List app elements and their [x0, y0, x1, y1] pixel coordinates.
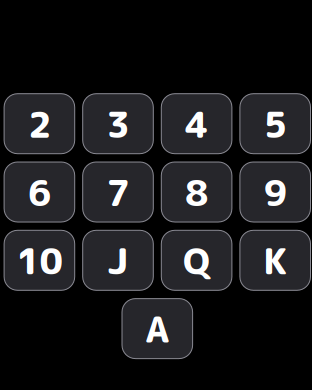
button[interactable]: 10 — [4, 230, 75, 290]
staticText: 2 — [28, 99, 51, 149]
staticText: K — [263, 236, 287, 286]
button[interactable]: 5 — [240, 94, 310, 154]
staticText: A — [145, 304, 169, 354]
button[interactable]: A — [122, 299, 193, 359]
staticText: 8 — [185, 167, 208, 217]
staticText: 3 — [106, 99, 129, 149]
button[interactable]: 4 — [161, 94, 232, 154]
staticText: 9 — [264, 167, 287, 217]
button[interactable]: K — [240, 230, 310, 290]
button[interactable]: J — [83, 230, 153, 290]
button[interactable]: 7 — [83, 162, 153, 222]
staticText: 7 — [106, 167, 129, 217]
button[interactable]: 9 — [240, 162, 310, 222]
button[interactable]: 3 — [83, 94, 153, 154]
staticText: 10 — [16, 236, 62, 286]
staticText: 6 — [28, 167, 51, 217]
staticText: 5 — [264, 99, 287, 149]
staticText: Q — [183, 236, 210, 286]
button[interactable]: 8 — [161, 162, 232, 222]
button[interactable]: 6 — [4, 162, 75, 222]
button[interactable]: 2 — [4, 94, 75, 154]
staticText: 4 — [185, 99, 208, 149]
button[interactable]: Q — [161, 230, 232, 290]
staticText: J — [107, 236, 128, 286]
